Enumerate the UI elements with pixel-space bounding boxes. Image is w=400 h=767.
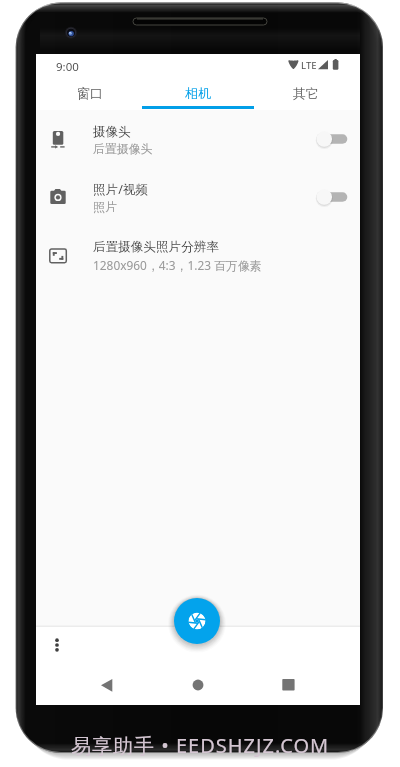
button[interactable]: Back xyxy=(87,665,127,705)
staticText: LTE xyxy=(301,59,317,72)
staticText: 后置摄像头照片分辨率 xyxy=(93,239,219,255)
button[interactable]: 窗口 xyxy=(36,79,144,106)
staticText: 后置摄像头 xyxy=(93,142,153,157)
button[interactable]: 照片/视频 xyxy=(36,168,360,226)
button[interactable]: Home xyxy=(178,665,218,705)
staticText: 相机 xyxy=(185,85,211,101)
staticText: 照片 xyxy=(93,200,117,215)
button[interactable]: 摄像头 xyxy=(36,110,360,168)
button[interactable]: 相机 xyxy=(144,79,252,106)
button[interactable]: 后置摄像头照片分辨率 xyxy=(36,226,360,284)
staticText: 1280x960，4:3，1.23 百万像素 xyxy=(93,257,262,273)
staticText: 窗口 xyxy=(77,85,103,101)
staticText: 摄像头 xyxy=(93,124,131,140)
button[interactable]: Toggle xyxy=(316,124,360,154)
button[interactable]: Toggle xyxy=(316,182,360,212)
staticText: 9:00 xyxy=(56,59,79,75)
button[interactable]: Recents xyxy=(268,665,308,705)
button[interactable]: More options xyxy=(40,628,74,662)
button[interactable]: Capture xyxy=(166,590,228,652)
staticText: 照片/视频 xyxy=(93,181,149,198)
staticText: 其它 xyxy=(293,85,319,101)
button[interactable]: 其它 xyxy=(252,79,360,106)
staticText: 易享助手 • EEDSHZJZ.COM xyxy=(71,732,330,759)
